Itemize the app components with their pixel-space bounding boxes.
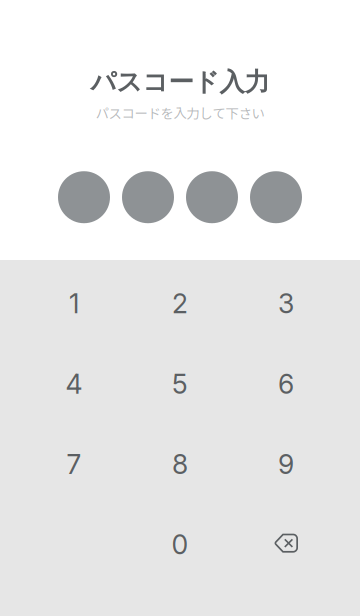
button[interactable]: 5 bbox=[127, 344, 233, 424]
staticText: 1 bbox=[69, 287, 79, 320]
button[interactable]: 8 bbox=[127, 424, 233, 504]
staticText: 2 bbox=[172, 287, 188, 320]
button[interactable]: 1 bbox=[21, 263, 127, 344]
button[interactable]: 7 bbox=[21, 424, 127, 504]
staticText: 6 bbox=[278, 368, 294, 400]
staticText: 8 bbox=[172, 448, 188, 480]
staticText: 0 bbox=[171, 528, 188, 561]
button[interactable]: 3 bbox=[233, 263, 339, 344]
staticText: 5 bbox=[172, 368, 188, 400]
staticText: 4 bbox=[65, 368, 82, 400]
button[interactable]: 0 bbox=[127, 504, 233, 585]
button[interactable]: Delete bbox=[233, 504, 339, 585]
staticText: 3 bbox=[278, 287, 294, 320]
staticText: パスコード入力 bbox=[90, 66, 269, 98]
staticText: 7 bbox=[66, 448, 81, 480]
button[interactable]: 9 bbox=[233, 424, 339, 504]
staticText: パスコードを入力して下さい bbox=[95, 103, 264, 122]
button[interactable]: 6 bbox=[233, 344, 339, 424]
button[interactable]: 2 bbox=[127, 263, 233, 344]
button[interactable]: 4 bbox=[21, 344, 127, 424]
staticText: 9 bbox=[278, 448, 294, 480]
